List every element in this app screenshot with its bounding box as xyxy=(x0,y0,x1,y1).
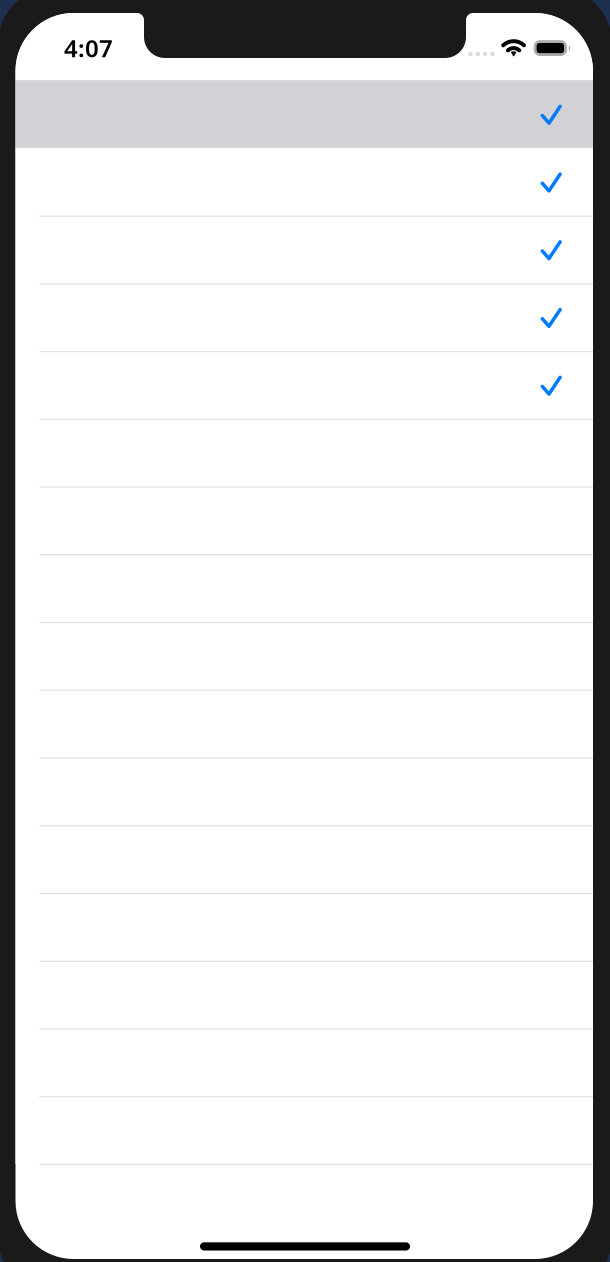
button[interactable] xyxy=(15,80,593,148)
button[interactable] xyxy=(15,1096,593,1164)
button[interactable] xyxy=(15,554,593,622)
button[interactable] xyxy=(15,283,593,351)
button[interactable] xyxy=(15,419,593,487)
button[interactable] xyxy=(15,825,593,893)
staticText: 4:07 xyxy=(64,32,113,64)
button[interactable] xyxy=(15,351,593,419)
button[interactable] xyxy=(15,622,593,690)
button[interactable] xyxy=(15,216,593,283)
button[interactable] xyxy=(15,690,593,757)
button[interactable] xyxy=(15,148,593,216)
button[interactable] xyxy=(15,893,593,961)
